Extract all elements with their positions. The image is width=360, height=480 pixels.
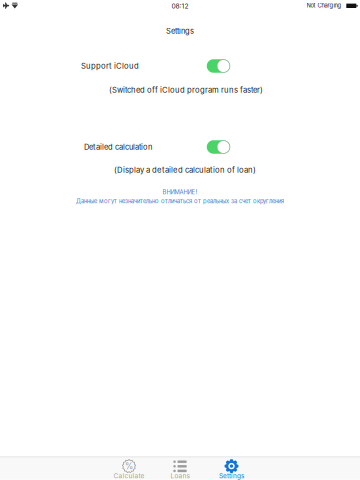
button[interactable]: % (104, 456, 154, 479)
staticText: Данные могут незначительно отличаться от… (76, 197, 284, 205)
staticText: Settings (219, 472, 244, 480)
button[interactable]: Loans (155, 456, 205, 479)
staticText: % (125, 461, 133, 471)
button[interactable]: Settings (206, 456, 256, 479)
staticText: Not Charging (306, 2, 341, 9)
staticText: Calculate (113, 472, 144, 480)
button[interactable]: Switch, on (207, 140, 230, 154)
staticText: Settings (166, 26, 194, 36)
staticText: (Display a detailed calculation of loan) (114, 165, 256, 175)
staticText: Detailed calculation (84, 142, 152, 152)
staticText: ВНИМАНИЕ! (162, 188, 197, 196)
staticText: (Switched off iCloud program runs faster… (109, 85, 263, 95)
staticText: Support iCloud (81, 61, 139, 71)
staticText: Loans (170, 472, 189, 480)
staticText: 08:12 (171, 2, 188, 10)
button[interactable]: Switch, on (207, 59, 230, 73)
